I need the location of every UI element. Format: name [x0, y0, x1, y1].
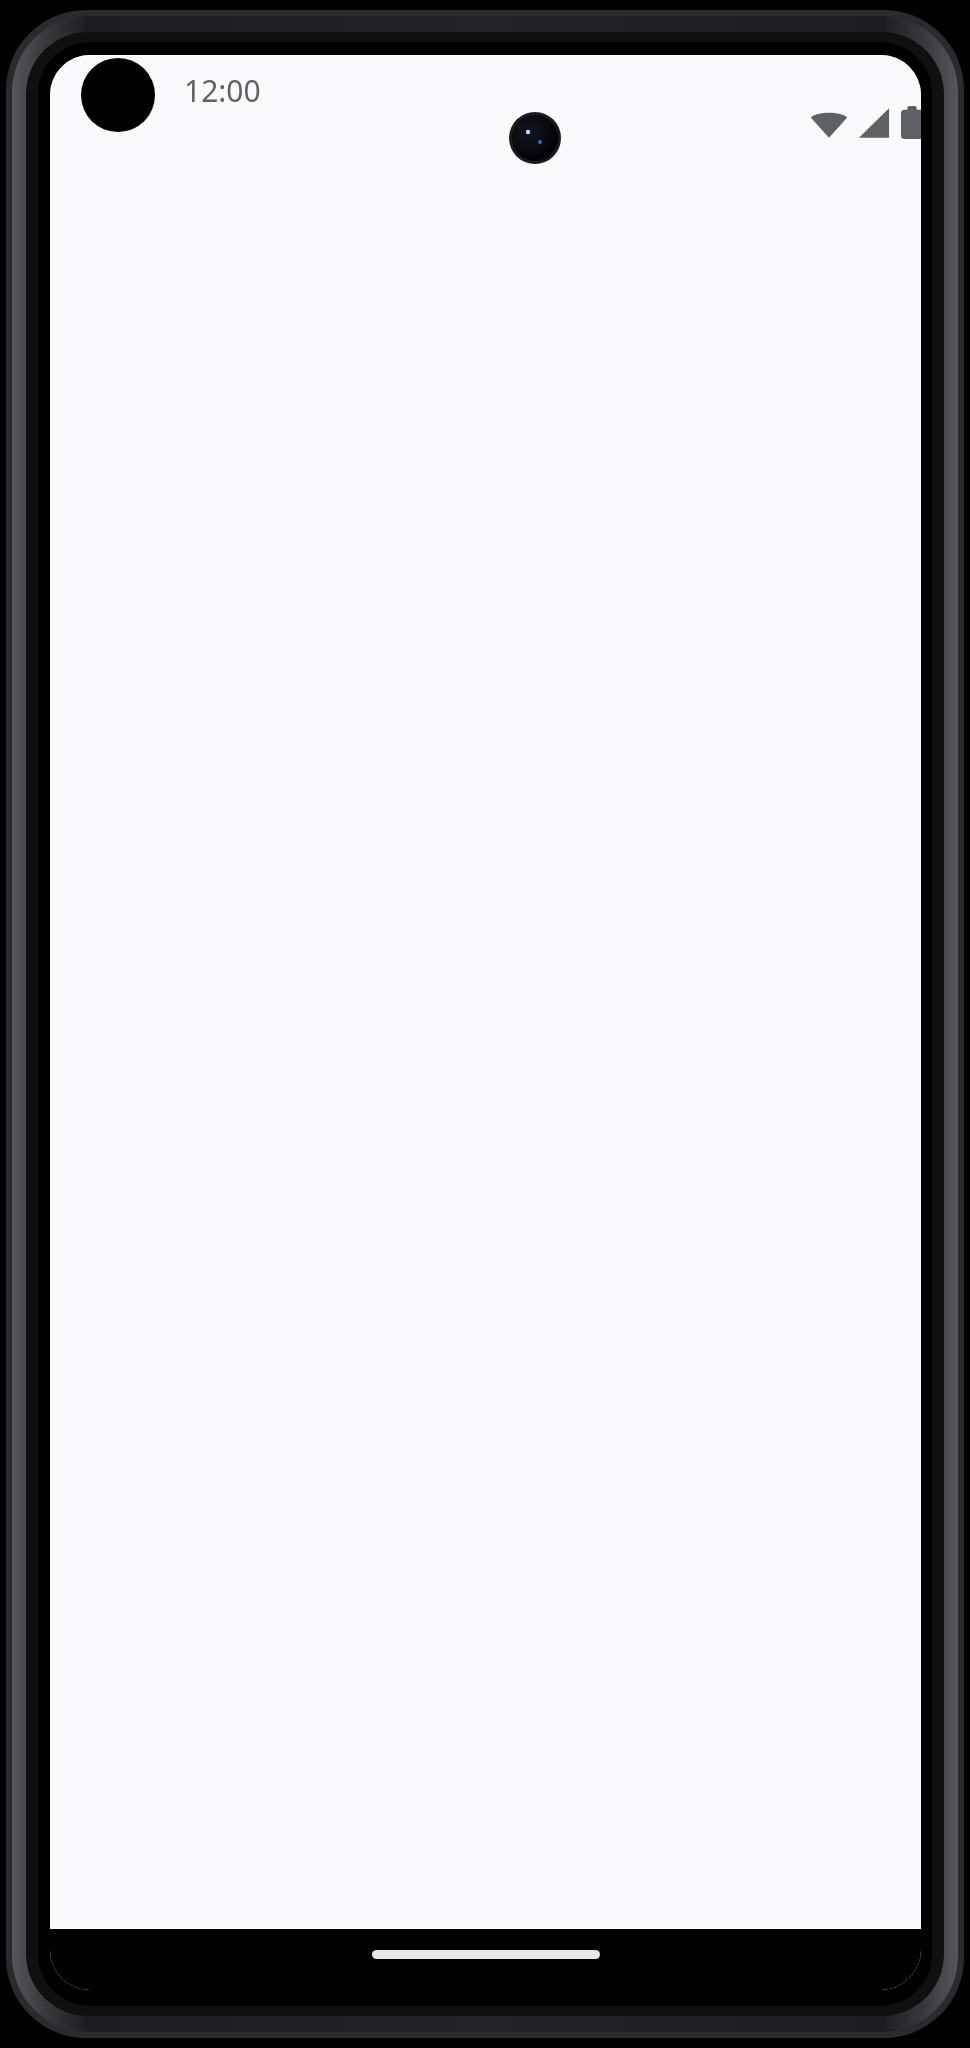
- button[interactable]: Notification: [81, 55, 159, 150]
- button[interactable]: Home gesture handle: [372, 1950, 600, 1959]
- other: Battery: [901, 106, 921, 139]
- other: Mobile signal: [858, 107, 890, 139]
- staticText: 12:00: [184, 70, 261, 111]
- other: Wi-Fi: [810, 107, 848, 139]
